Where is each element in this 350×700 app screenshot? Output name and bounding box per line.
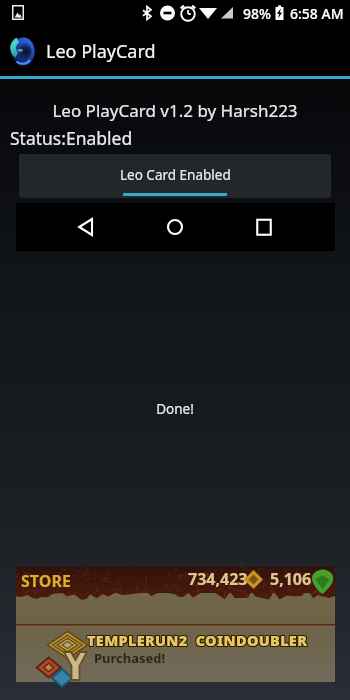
staticText: STORE: [21, 570, 71, 592]
staticText: TEMPLERUN2 COINDOUBLER: [86, 630, 307, 650]
staticText: Done!: [0, 400, 350, 418]
staticText: Leo PlayCard v1.2 by Harsh223: [0, 99, 350, 122]
staticText: Status:Enabled: [10, 126, 133, 150]
staticText: TEMPLERUN2 COINDOUBLER: [88, 631, 309, 651]
staticText: TEMPLERUN2 COINDOUBLER: [87, 630, 308, 650]
button[interactable]: Recents: [252, 215, 276, 239]
staticText: TEMPLERUN2 COINDOUBLER: [87, 629, 308, 649]
staticText: 98%: [243, 4, 271, 23]
staticText: 734,423: [188, 568, 248, 590]
button[interactable]: Leo Card Enabled: [19, 154, 331, 198]
staticText: 6:58 AM: [290, 4, 344, 23]
staticText: Leo PlayCard: [46, 39, 156, 64]
staticText: TEMPLERUN2 COINDOUBLER: [87, 631, 308, 651]
staticText: Leo Card Enabled: [120, 166, 231, 184]
staticText: TEMPLERUN2 COINDOUBLER: [88, 630, 309, 650]
button[interactable]: Back: [74, 215, 98, 239]
staticText: Purchased!: [94, 649, 166, 667]
staticText: TEMPLERUN2 COINDOUBLER: [86, 629, 307, 649]
staticText: TEMPLERUN2 COINDOUBLER: [86, 631, 307, 651]
staticText: 5,106: [270, 568, 312, 590]
staticText: TEMPLERUN2 COINDOUBLER: [88, 629, 309, 649]
button[interactable]: Home: [163, 215, 187, 239]
